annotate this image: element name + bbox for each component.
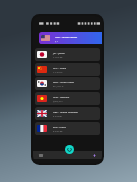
button[interactable]: Convert (65, 145, 74, 154)
staticText: JPY - Japan (53, 51, 65, 54)
button[interactable]: VND - Vietnam (35, 92, 100, 105)
button[interactable]: Menu (39, 154, 43, 157)
staticText: EUR - Euros (53, 125, 66, 128)
staticText: VND - Vietnam (53, 95, 70, 98)
staticText: ¥ 7.2414 (53, 70, 63, 73)
staticText: USD - United States (55, 35, 78, 38)
staticText: CNY - China (53, 66, 67, 69)
staticText: $ 1 (55, 39, 59, 42)
button[interactable]: KRW - South Korea (35, 77, 100, 90)
staticText: € 0.9198 (53, 129, 63, 132)
button[interactable]: USD - United States (39, 32, 102, 44)
staticText: ₫ 25,417 (53, 99, 63, 102)
staticText: KRW - South Korea (53, 80, 74, 83)
staticText: £ 0.7881 (53, 114, 63, 117)
staticText: ¥ 157.06 (53, 55, 63, 58)
button[interactable]: JPY - Japan (35, 48, 100, 61)
button[interactable]: GBP - United Kingdom (35, 107, 100, 120)
button[interactable]: CNY - China (35, 63, 100, 76)
button[interactable]: EUR - Euros (35, 122, 100, 135)
staticText: GBP - United Kingdom (53, 110, 79, 113)
staticText: ₩ 1,371.5 (53, 84, 64, 87)
button[interactable]: Theme (93, 154, 96, 157)
